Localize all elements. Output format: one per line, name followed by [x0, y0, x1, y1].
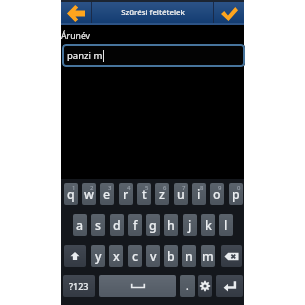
staticText: c: [132, 248, 139, 265]
button[interactable]: l: [219, 214, 233, 236]
button[interactable]: o: [210, 183, 224, 205]
staticText: m: [202, 248, 214, 265]
button[interactable]: panzi m: [62, 44, 245, 67]
staticText: b: [167, 248, 175, 265]
staticText: z: [159, 186, 165, 203]
staticText: w: [84, 186, 94, 203]
button[interactable]: Settings: [198, 275, 212, 297]
staticText: q: [67, 186, 75, 203]
button[interactable]: d: [110, 214, 124, 236]
button[interactable]: v: [146, 245, 160, 267]
button[interactable]: Backspace: [221, 245, 242, 267]
button[interactable]: k: [201, 214, 215, 236]
staticText: .: [186, 279, 189, 293]
staticText: 1: [72, 184, 76, 192]
staticText: 6: [163, 184, 167, 192]
staticText: e: [103, 186, 111, 203]
button[interactable]: Space: [99, 275, 176, 297]
button[interactable]: n: [182, 245, 196, 267]
button[interactable]: Shift: [64, 245, 86, 267]
staticText: i: [197, 186, 201, 203]
staticText: 9: [218, 184, 222, 192]
button[interactable]: Back: [61, 2, 91, 25]
staticText: x: [113, 248, 120, 265]
button[interactable]: y: [91, 245, 105, 267]
staticText: 4: [127, 184, 131, 192]
button[interactable]: q: [64, 183, 78, 205]
button[interactable]: t: [137, 183, 151, 205]
staticText: g: [149, 217, 157, 234]
staticText: 2: [90, 184, 94, 192]
button[interactable]: f: [128, 214, 142, 236]
staticText: y: [95, 248, 102, 265]
staticText: n: [185, 248, 193, 265]
button[interactable]: b: [164, 245, 178, 267]
staticText: l: [224, 217, 228, 234]
staticText: u: [177, 186, 185, 203]
button[interactable]: Accept: [214, 2, 244, 25]
button[interactable]: a: [73, 214, 87, 236]
staticText: h: [167, 217, 175, 234]
button[interactable]: c: [128, 245, 142, 267]
button[interactable]: z: [155, 183, 169, 205]
button[interactable]: w: [82, 183, 96, 205]
staticText: k: [205, 217, 212, 234]
staticText: j: [188, 217, 192, 234]
staticText: t: [142, 186, 147, 203]
staticText: p: [232, 186, 240, 203]
button[interactable]: s: [91, 214, 105, 236]
button[interactable]: h: [164, 214, 178, 236]
staticText: 8: [200, 184, 204, 192]
staticText: v: [150, 248, 157, 265]
button[interactable]: .: [180, 275, 195, 297]
staticText: 5: [145, 184, 149, 192]
button[interactable]: i: [192, 183, 206, 205]
button[interactable]: j: [183, 214, 197, 236]
staticText: ?123: [69, 280, 89, 292]
staticText: a: [76, 217, 84, 234]
button[interactable]: ?123: [63, 275, 95, 297]
staticText: o: [213, 186, 221, 203]
button[interactable]: e: [100, 183, 114, 205]
staticText: panzi m: [67, 49, 103, 62]
staticText: Szűrési feltételek: [121, 7, 185, 18]
staticText: r: [123, 186, 129, 203]
button[interactable]: u: [174, 183, 188, 205]
staticText: 7: [182, 184, 186, 192]
button[interactable]: p: [229, 183, 243, 205]
button[interactable]: x: [109, 245, 123, 267]
button[interactable]: m: [201, 245, 215, 267]
staticText: s: [95, 217, 101, 234]
button[interactable]: Enter: [216, 275, 243, 297]
button[interactable]: g: [146, 214, 160, 236]
staticText: 3: [108, 184, 112, 192]
staticText: Árunév: [61, 30, 91, 42]
staticText: d: [113, 217, 121, 234]
button[interactable]: r: [119, 183, 133, 205]
staticText: 0: [237, 184, 241, 192]
staticText: f: [133, 217, 138, 234]
